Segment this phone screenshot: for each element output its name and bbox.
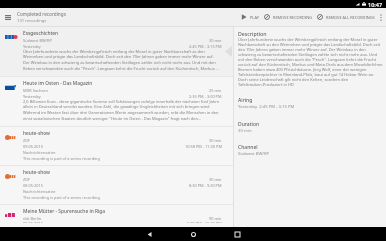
staticText: REMOVE ALL RECORDINGS [326,15,375,20]
staticText: This recording is part of a series recor… [23,156,100,161]
staticText: 25 min [209,88,222,93]
staticText: 131 recordings [17,18,47,24]
staticText: Essgeschichten [23,30,59,37]
staticText: Südwest BW/RP [23,38,52,43]
staticText: PLAY [250,15,259,20]
staticText: ZDF [23,138,31,143]
button[interactable]: Essgeschichten [0,27,233,76]
staticText: REMOVE RECORDING [273,15,312,20]
staticText: 09.05.2015 [23,221,43,223]
button[interactable]: More options [376,8,386,26]
button[interactable]: REMOVE ALL RECORDINGS [316,8,376,26]
button[interactable]: PLAY [240,8,260,26]
staticText: Heute im Osten - Das Magazin [23,80,93,87]
staticText: Description [238,30,267,37]
staticText: Über Jahrhunderte wuchs der Weinbergpfir… [23,49,221,72]
staticText: Airing [238,97,253,104]
button[interactable]: Home [180,227,206,241]
staticText: Südwest BW/RP [238,151,270,157]
staticText: Yesterday [23,44,41,49]
staticText: 2:45 PM - 3:15 PM [189,44,222,49]
staticText: 30 min [209,177,222,182]
button[interactable]: Open navigation drawer [0,8,16,26]
staticText: Yesterday [23,94,41,99]
staticText: 9:00 PM - 11:00 PM [187,221,222,223]
staticText: This recording is part of a series recor… [23,195,100,200]
staticText: 10:58 PM - 11:30 PM [185,144,222,149]
staticText: 8:30 PM - 9:30 PM [189,183,222,188]
staticText: Yesterday 2:45 PM - 3:15 PM [238,104,295,110]
staticText: 30 min [238,128,252,134]
staticText: Duration [238,121,260,128]
staticText: Nachrichtensatire [23,189,56,194]
staticText: MDR Sachsen [23,88,48,93]
staticText: heute-show [23,169,50,176]
staticText: 90 min [209,216,222,221]
staticText: Channel [238,144,258,151]
staticText: Über Jahrhunderte wuchs der Weinbergpfir… [238,37,383,87]
staticText: 10:47 [368,1,383,8]
staticText: 2,6 Billionen Euro - diese gigantische S… [23,99,221,122]
button[interactable]: heute-show [0,127,233,165]
staticText: Completed recordings [17,11,66,17]
staticText: 2:35 PM - 3:00 PM [189,94,222,99]
staticText: 08.05.2015 [23,183,43,188]
button[interactable]: Back [136,227,162,241]
button[interactable]: Heute im Osten - Das Magazin [0,77,233,126]
staticText: 30 min [209,138,222,143]
button[interactable]: Meine Mütter - Spurensuche in Riga [0,205,233,227]
staticText: heute-show [23,130,50,137]
button[interactable]: Recent apps [224,227,250,241]
staticText: 30 min [209,38,222,43]
staticText: Meine Mütter - Spurensuche in Riga [23,208,105,215]
staticText: 09.05.2015 [23,144,43,149]
staticText: rbb Berlin [23,216,42,221]
button[interactable]: heute-show [0,166,233,204]
staticText: ZDF [23,177,31,182]
button[interactable]: REMOVE RECORDING [263,8,313,26]
staticText: Nachrichtensatire [23,150,56,155]
